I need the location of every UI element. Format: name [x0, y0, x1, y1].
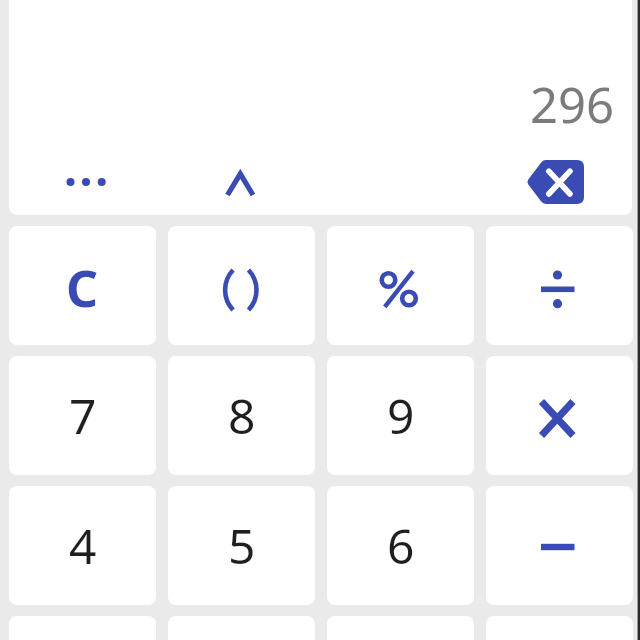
staticText: 7 [69, 383, 97, 448]
staticText: 296 [530, 71, 615, 138]
button[interactable]: 6 [327, 486, 474, 605]
staticText: C [66, 254, 99, 322]
staticText: 8 [228, 383, 256, 448]
button[interactable] [58, 166, 114, 198]
staticText: 4 [69, 513, 97, 578]
button[interactable] [327, 226, 474, 345]
button[interactable]: 7 [9, 356, 156, 475]
button[interactable]: 4 [9, 486, 156, 605]
button[interactable] [486, 356, 633, 475]
button[interactable]: 5 [168, 486, 315, 605]
button[interactable] [486, 226, 633, 345]
staticText: 6 [387, 513, 415, 578]
button[interactable]: 8 [168, 356, 315, 475]
button[interactable]: 9 [327, 356, 474, 475]
button[interactable] [520, 154, 592, 210]
button[interactable] [168, 226, 315, 345]
staticText: 9 [387, 383, 415, 448]
button[interactable] [486, 486, 633, 605]
button[interactable] [214, 162, 266, 202]
button[interactable]: C [9, 226, 156, 345]
staticText: 5 [228, 513, 256, 578]
